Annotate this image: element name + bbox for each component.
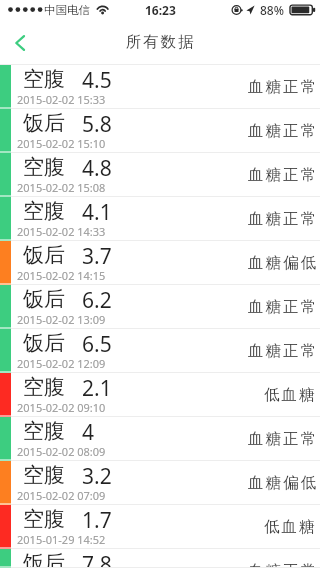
button[interactable]: 饭后	[0, 109, 320, 153]
staticText: 饭后	[23, 550, 65, 568]
staticText: 2015-01-29 14:52	[17, 532, 106, 547]
button[interactable]: 空腹	[0, 197, 320, 241]
staticText: 血糖正常	[247, 209, 317, 229]
staticText: 2015-02-02 09:10	[17, 400, 106, 415]
staticText: 2015-02-02 08:09	[17, 444, 106, 459]
staticText: 空腹	[23, 154, 65, 180]
staticText: 空腹	[23, 374, 65, 400]
staticText: 饭后	[23, 242, 65, 268]
staticText: 4.5	[82, 66, 112, 95]
staticText: 低血糖	[264, 517, 317, 537]
staticText: 2015-02-02 15:08	[17, 180, 106, 195]
staticText: 7.8	[82, 550, 112, 568]
staticText: 88%	[260, 2, 284, 18]
staticText: 3.7	[82, 242, 112, 271]
staticText: 2015-02-02 14:33	[17, 224, 106, 239]
staticText: 4.1	[82, 198, 112, 227]
staticText: 中国电信	[44, 3, 90, 17]
staticText: 血糖正常	[247, 77, 317, 97]
staticText: 低血糖	[264, 385, 317, 405]
staticText: 5.8	[82, 110, 112, 139]
button[interactable]: 空腹	[0, 65, 320, 109]
staticText: 2015-02-02 13:09	[17, 312, 106, 327]
staticText: 饭后	[23, 330, 65, 356]
staticText: 所有数据	[126, 32, 196, 52]
staticText: 2015-02-02 12:09	[17, 356, 106, 371]
button[interactable]: 饭后	[0, 241, 320, 285]
staticText: 血糖正常	[247, 429, 317, 449]
button[interactable]: 空腹	[0, 153, 320, 197]
staticText: 1.7	[82, 506, 112, 535]
staticText: 血糖正常	[247, 561, 317, 568]
staticText: 血糖正常	[247, 341, 317, 361]
button[interactable]: 饭后	[0, 329, 320, 373]
staticText: 空腹	[23, 198, 65, 224]
staticText: 4.8	[82, 154, 112, 183]
button[interactable]: 空腹	[0, 417, 320, 461]
button[interactable]: 饭后	[0, 549, 320, 568]
staticText: 4	[82, 418, 95, 447]
staticText: 2015-02-02 15:33	[17, 92, 106, 107]
staticText: 血糖偏低	[247, 473, 317, 493]
staticText: 2015-02-02 15:10	[17, 136, 106, 151]
staticText: 空腹	[23, 506, 65, 532]
staticText: 16:23	[145, 2, 176, 18]
staticText: 血糖正常	[247, 121, 317, 141]
staticText: 6.5	[82, 330, 112, 359]
staticText: 2.1	[82, 374, 112, 403]
staticText: 2015-02-02 14:15	[17, 268, 106, 283]
button[interactable]: 空腹	[0, 373, 320, 417]
staticText: 2015-02-02 07:09	[17, 488, 106, 503]
button[interactable]: 饭后	[0, 285, 320, 329]
staticText: 空腹	[23, 66, 65, 92]
button[interactable]: Back	[0, 21, 44, 65]
staticText: 饭后	[23, 110, 65, 136]
button[interactable]: 空腹	[0, 461, 320, 505]
button[interactable]: 空腹	[0, 505, 320, 549]
staticText: 6.2	[82, 286, 112, 315]
staticText: 血糖偏低	[247, 253, 317, 273]
staticText: 饭后	[23, 286, 65, 312]
staticText: 空腹	[23, 462, 65, 488]
staticText: 血糖正常	[247, 297, 317, 317]
staticText: 血糖正常	[247, 165, 317, 185]
staticText: 空腹	[23, 418, 65, 444]
staticText: 3.2	[82, 462, 112, 491]
